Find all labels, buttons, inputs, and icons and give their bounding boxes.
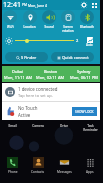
staticText: Apps [86, 170, 94, 174]
button[interactable]: Bluetooth [77, 10, 96, 29]
staticText: Mon, 02:11 AM [36, 75, 65, 80]
staticText: SHOW LOCK [75, 110, 94, 114]
staticText: Sydney [77, 69, 91, 74]
staticText: Mon, 11:11 AM [4, 75, 33, 80]
staticText: Wi-Fi [7, 25, 14, 29]
button[interactable]: Sound [39, 10, 58, 29]
staticText: Phone [8, 170, 18, 174]
button[interactable]: S Finder [5, 52, 48, 62]
button[interactable]: Contacts [25, 157, 51, 174]
staticText: Boston [44, 69, 58, 74]
button[interactable]: Brightness [4, 36, 13, 45]
staticText: Mon, 06:11 PM [70, 75, 98, 80]
staticText: S Finder [21, 55, 37, 60]
staticText: Email [8, 124, 17, 128]
button[interactable]: Task Reminder [77, 124, 103, 132]
staticText: No Touch [18, 105, 38, 111]
staticText: Drive [60, 124, 68, 128]
staticText: Location [23, 25, 36, 29]
staticText: 2 [76, 38, 79, 43]
button[interactable]: Dubai [2, 66, 34, 80]
staticText: Bluetooth [80, 25, 94, 29]
button[interactable]: SHOW LOCK [72, 107, 97, 116]
button[interactable]: Camera [25, 124, 51, 132]
button[interactable]: Edit quick settings [90, 1, 98, 9]
button[interactable]: Auto brightness [84, 37, 95, 47]
staticText: Contacts [31, 170, 45, 174]
button[interactable]: Wi-Fi [0, 10, 20, 29]
button[interactable]: Boston [34, 66, 67, 80]
staticText: Tap here to set up. [18, 93, 53, 98]
staticText: Screen rotation [62, 25, 74, 33]
staticText: 1 device connected [18, 86, 58, 92]
button[interactable]: Quick connect [51, 52, 94, 62]
staticText: Task Reminder [83, 124, 98, 132]
staticText: Camera [32, 124, 44, 128]
staticText: Quick connect [62, 55, 89, 60]
button[interactable]: Messages [51, 157, 77, 174]
button[interactable]: Apps [77, 157, 103, 174]
staticText: Mon, June 4 [28, 3, 47, 8]
staticText: Sound [44, 25, 54, 29]
button[interactable]: Phone [0, 157, 25, 174]
button[interactable]: Settings [80, 1, 88, 9]
button[interactable]: Sydney [67, 66, 100, 80]
staticText: Active [18, 112, 31, 118]
button[interactable]: Location [20, 10, 39, 29]
button[interactable] [15, 37, 74, 44]
button[interactable]: Email [0, 124, 25, 132]
staticText: Messages [57, 170, 72, 174]
staticText: PM [22, 3, 27, 7]
staticText: Auto [86, 43, 93, 47]
button[interactable]: Drive [51, 124, 77, 132]
staticText: 12:41 [3, 0, 21, 10]
button[interactable]: 1 device connected [2, 83, 100, 101]
button[interactable]: Screen rotation [58, 10, 77, 33]
staticText: Dubai [12, 69, 24, 74]
